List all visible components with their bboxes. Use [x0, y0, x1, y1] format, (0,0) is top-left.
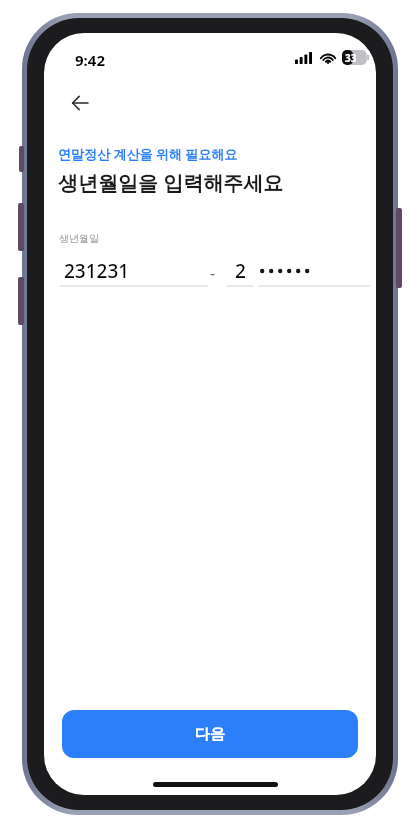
other: Power — [396, 208, 402, 288]
staticText: 다음 — [195, 725, 225, 744]
staticText: 231231 — [64, 258, 130, 284]
button[interactable]: 231231 — [60, 255, 208, 287]
staticText: - — [210, 262, 216, 284]
staticText: 33 — [345, 51, 357, 65]
other: Volume up — [18, 203, 24, 251]
button[interactable]: 2 — [227, 255, 253, 287]
button[interactable]: 다음 — [62, 710, 358, 758]
other: Volume down — [18, 277, 24, 325]
other: Mute switch — [19, 146, 24, 172]
staticText: 생년월일을 입력해주세요 — [58, 169, 284, 196]
button[interactable]: Masked registration number — [258, 255, 370, 287]
staticText: 9:42 — [75, 50, 105, 70]
button[interactable]: Back — [58, 81, 102, 125]
staticText: 2 — [235, 258, 246, 284]
staticText: 연말정산 계산을 위해 필요해요 — [58, 145, 238, 163]
staticText: 생년월일 — [59, 232, 99, 245]
